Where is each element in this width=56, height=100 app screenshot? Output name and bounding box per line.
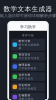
staticText: 输入题目即可获得详细解析步骤 [0, 13, 56, 18]
staticText: 英语写作 [18, 53, 30, 56]
button[interactable]: 数学计算 [11, 39, 45, 51]
button[interactable]: 生物图谱 [11, 93, 45, 100]
staticText: 力学电学模拟 [18, 67, 36, 70]
staticText: 数学计算 [18, 40, 30, 43]
button[interactable]: 物理实验 [11, 62, 45, 71]
staticText: 历史时间 [18, 83, 30, 87]
staticText: 朝代年表梳理 [18, 87, 36, 90]
staticText: 推荐功能 [22, 34, 34, 37]
staticText: 作文批改与润色 [18, 57, 39, 60]
staticText: 解方程与函数图像 [18, 43, 39, 50]
staticText: 学习助手 [20, 24, 36, 29]
staticText: 物理实验 [18, 63, 30, 66]
staticText: 配平与反应 [18, 77, 33, 80]
staticText: 生物图谱 [18, 94, 30, 97]
staticText: 化学方程 [18, 73, 30, 77]
button[interactable]: 历史时间 [11, 82, 45, 91]
button[interactable]: 化学方程 [11, 72, 45, 81]
button[interactable]: 英语写作 [11, 52, 45, 61]
staticText: 细胞与遗传 [18, 97, 33, 100]
staticText: 数学文本生成器 [3, 5, 52, 13]
